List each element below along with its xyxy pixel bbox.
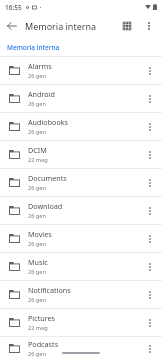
- button[interactable]: More options for Podcasts: [140, 337, 160, 360]
- button[interactable]: Notifications: [0, 281, 162, 308]
- staticText: 26 gen: [28, 100, 46, 108]
- button[interactable]: Movies: [0, 225, 162, 252]
- staticText: 22 mag: [28, 324, 48, 332]
- button[interactable]: More options for Documents: [140, 169, 160, 196]
- staticText: Download: [28, 201, 63, 211]
- staticText: 26 gen: [28, 184, 46, 192]
- staticText: DCIM: [28, 145, 47, 155]
- button[interactable]: More options for Audiobooks: [140, 113, 160, 140]
- button[interactable]: DCIM: [0, 141, 162, 168]
- staticText: 26 gen: [28, 128, 46, 136]
- staticText: Android: [28, 89, 55, 99]
- button[interactable]: Alarms: [0, 57, 162, 84]
- staticText: 26 gen: [28, 350, 46, 358]
- staticText: Movies: [28, 229, 52, 239]
- staticText: Podcasts: [28, 339, 59, 349]
- button[interactable]: More options for Alarms: [140, 57, 160, 84]
- staticText: 26 gen: [28, 296, 46, 304]
- staticText: 26 gen: [28, 268, 46, 276]
- staticText: Documents: [28, 173, 67, 183]
- button[interactable]: Audiobooks: [0, 113, 162, 140]
- button[interactable]: More options for Pictures: [140, 309, 160, 336]
- staticText: 26 gen: [28, 72, 46, 80]
- staticText: Alarms: [28, 61, 52, 71]
- staticText: 16:55: [5, 3, 22, 12]
- button[interactable]: Memoria interna: [0, 38, 162, 56]
- button[interactable]: More options: [138, 15, 160, 37]
- staticText: Pictures: [28, 313, 56, 323]
- staticText: Memoria interna: [25, 20, 97, 32]
- staticText: 22 mag: [28, 156, 48, 164]
- staticText: Memoria interna: [7, 43, 60, 52]
- staticText: 26 gen: [28, 240, 46, 248]
- staticText: Audiobooks: [28, 117, 69, 127]
- button[interactable]: Pictures: [0, 309, 162, 336]
- button[interactable]: More options for Notifications: [140, 281, 160, 308]
- button[interactable]: Music: [0, 253, 162, 280]
- staticText: Notifications: [28, 285, 71, 295]
- staticText: Music: [28, 257, 48, 267]
- button[interactable]: Grid view: [116, 15, 138, 37]
- button[interactable]: Back: [0, 14, 24, 38]
- button[interactable]: Podcasts: [0, 337, 162, 360]
- button[interactable]: More options for Music: [140, 253, 160, 280]
- button[interactable]: More options for Download: [140, 197, 160, 224]
- button[interactable]: Android: [0, 85, 162, 112]
- button[interactable]: More options for Movies: [140, 225, 160, 252]
- staticText: 26 gen: [28, 212, 46, 220]
- button[interactable]: Documents: [0, 169, 162, 196]
- button[interactable]: More options for DCIM: [140, 141, 160, 168]
- button[interactable]: Download: [0, 197, 162, 224]
- button[interactable]: More options for Android: [140, 85, 160, 112]
